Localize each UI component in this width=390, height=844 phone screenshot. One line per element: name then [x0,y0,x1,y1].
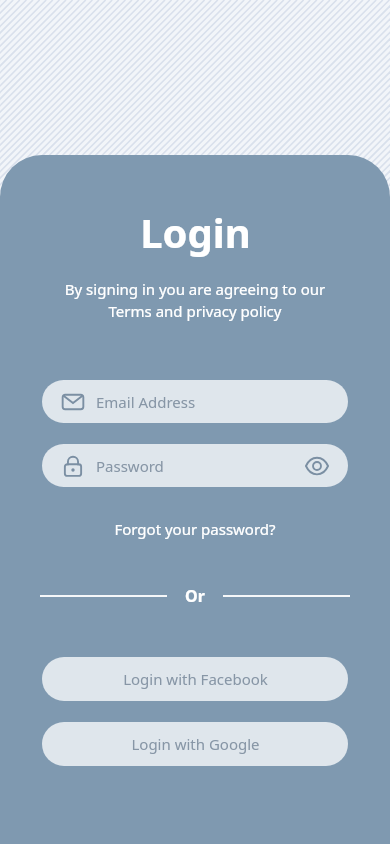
staticText: Login [140,205,251,259]
button[interactable]: Login with Google [42,722,348,766]
staticText: Login with Google [131,734,260,754]
button[interactable]: Email [42,380,348,423]
staticText: Forgot your password? [114,519,276,539]
staticText: Login with Facebook [123,669,268,689]
staticText: Password [96,456,164,476]
staticText: By signing in you are agreeing to our Te… [30,279,360,322]
staticText: Email Address [96,392,196,412]
button[interactable]: Password [42,444,348,487]
button[interactable]: Forgot your password? [106,515,284,543]
button[interactable]: Show password [304,453,330,479]
other: Password [62,455,84,477]
button[interactable]: Login with Facebook [42,657,348,701]
staticText: Or [185,585,205,607]
other: Email [62,391,84,413]
